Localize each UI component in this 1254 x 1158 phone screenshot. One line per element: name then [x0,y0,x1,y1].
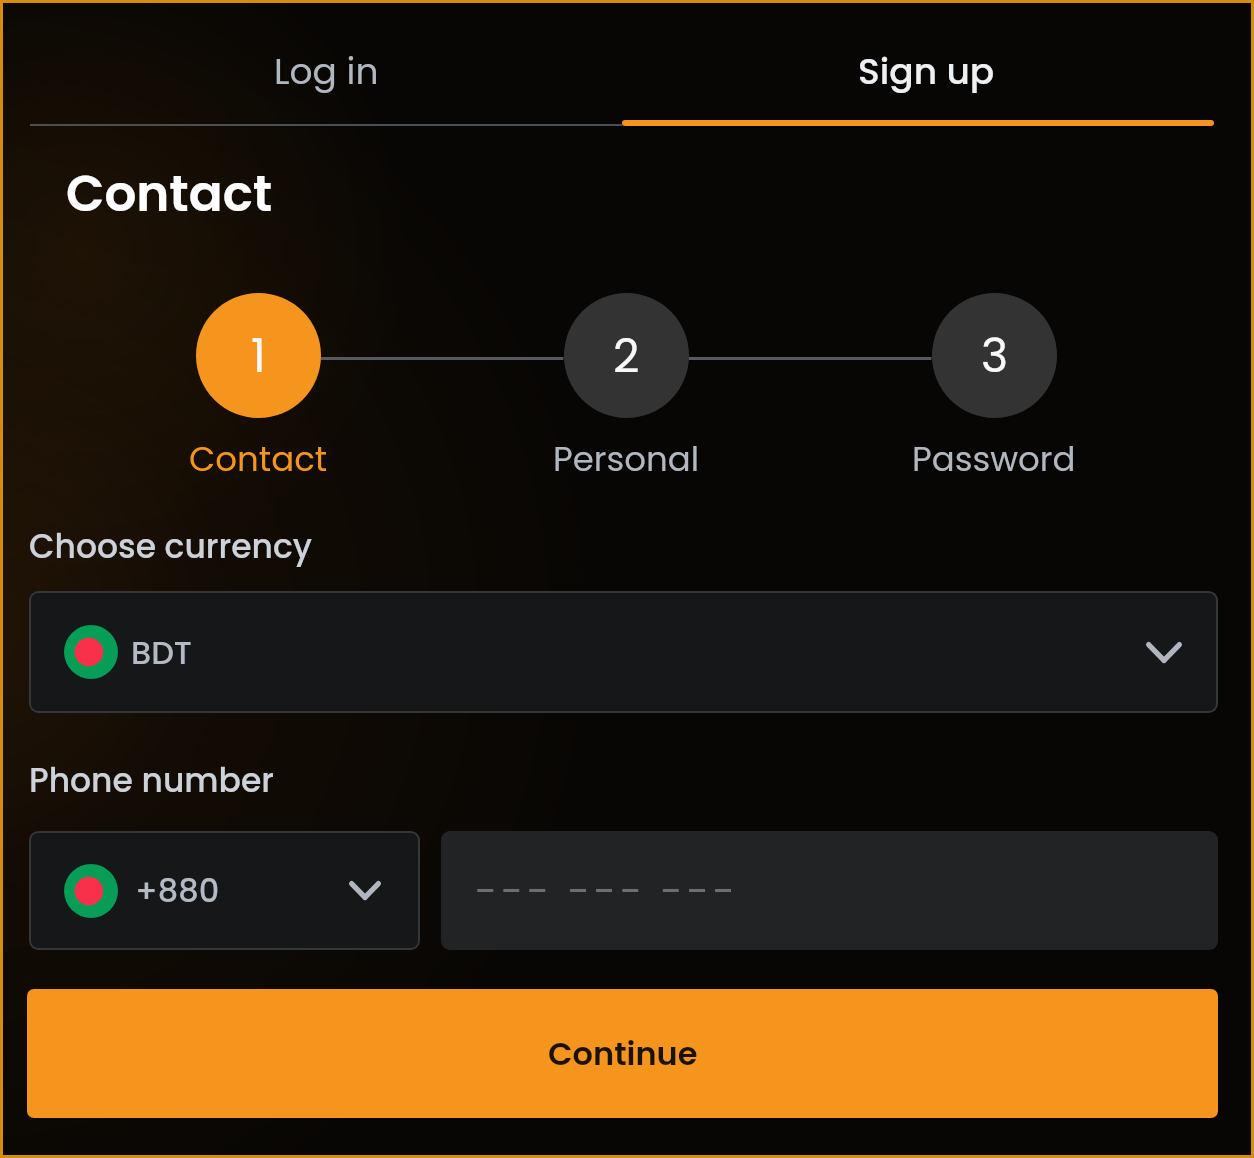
staticText: Continue [548,1031,698,1076]
button[interactable]: BDT [29,591,1218,713]
staticText: Log in [274,46,379,96]
staticText: 3 [981,324,1009,388]
staticText: Choose currency [29,523,312,569]
button[interactable]: 1 [196,293,321,418]
staticText: Personal [553,435,700,483]
staticText: Contact [66,159,273,229]
button[interactable]: --- --- --- [441,831,1218,950]
button[interactable]: Continue [27,989,1218,1118]
other: Open currency list [1146,642,1182,663]
staticText: 1 [251,324,266,388]
other: Open country code list [349,881,381,900]
button[interactable]: 3 [932,293,1057,418]
button[interactable]: +880 [29,831,420,950]
staticText: +880 [135,868,220,913]
staticText: Password [912,435,1076,483]
staticText: BDT [131,630,192,675]
staticText: Sign up [858,46,995,96]
button[interactable]: Sign up [627,3,1251,126]
button[interactable]: Log in [3,3,627,126]
staticText: Contact [189,435,328,483]
staticText: 2 [613,324,640,388]
button[interactable]: 2 [564,293,689,418]
staticText: --- --- --- [475,863,739,919]
staticText: Phone number [29,757,274,803]
